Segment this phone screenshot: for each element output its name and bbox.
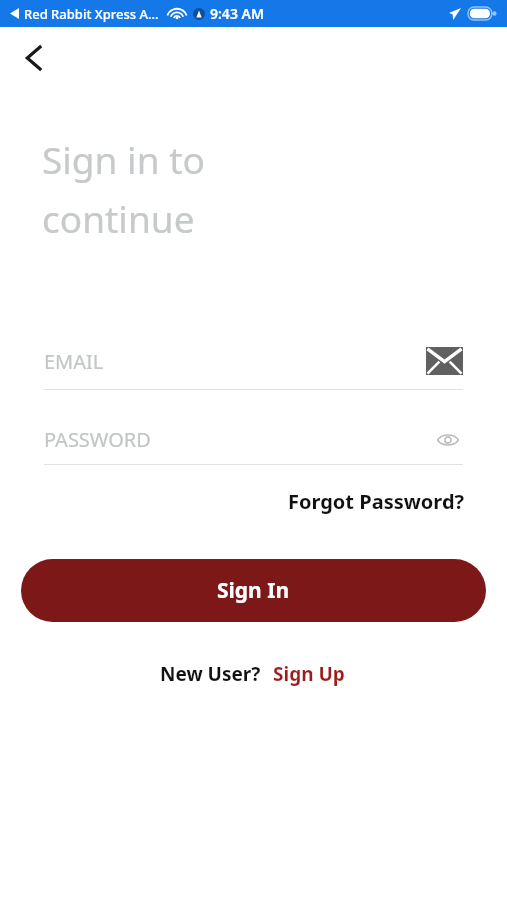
button[interactable]: Back — [12, 36, 56, 80]
button[interactable]: EMAIL — [44, 341, 463, 381]
staticText: PASSWORD — [44, 426, 151, 453]
staticText: New User? — [160, 661, 261, 687]
staticText: Sign In — [217, 576, 290, 605]
button[interactable]: Show password — [433, 425, 463, 455]
staticText: Forgot Password? — [288, 488, 465, 515]
staticText: EMAIL — [44, 348, 104, 375]
button[interactable]: Sign In — [21, 559, 486, 622]
staticText: 9:43 AM — [210, 4, 264, 23]
staticText: Sign in to — [42, 134, 205, 184]
button[interactable]: Forgot Password? — [286, 486, 467, 517]
staticText: continue — [42, 193, 195, 243]
button[interactable]: PASSWORD — [44, 423, 463, 456]
button[interactable]: Sign Up — [271, 659, 347, 689]
staticText: Red Rabbit Xpress A... — [24, 5, 159, 23]
staticText: Sign Up — [273, 661, 345, 687]
